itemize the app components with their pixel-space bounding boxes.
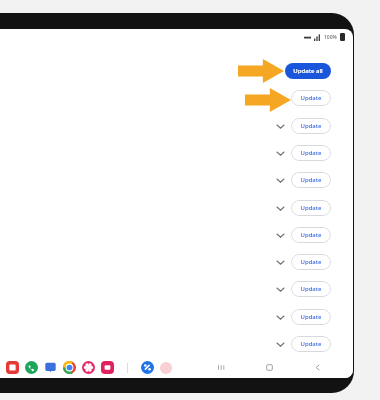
staticText: Update — [300, 176, 322, 184]
button[interactable]: Update all — [285, 63, 331, 79]
button[interactable]: Expand — [273, 309, 287, 325]
staticText: Update — [300, 313, 322, 321]
button[interactable]: Expand — [273, 145, 287, 161]
button[interactable]: Phone — [25, 361, 38, 374]
staticText: Update — [300, 149, 322, 157]
button[interactable]: Expand — [273, 281, 287, 297]
staticText: Update — [300, 340, 322, 348]
button[interactable]: Update — [291, 118, 331, 134]
staticText: Update — [300, 258, 322, 266]
button[interactable]: Update — [291, 336, 331, 352]
button[interactable]: Recents — [213, 359, 229, 375]
button[interactable]: Expand — [273, 118, 287, 134]
button[interactable]: Expand — [273, 200, 287, 216]
staticText: Update — [300, 122, 322, 130]
button[interactable]: Back — [309, 359, 325, 375]
staticText: Update — [300, 204, 322, 212]
button[interactable]: Expand — [273, 172, 287, 188]
button[interactable]: Update — [291, 145, 331, 161]
button[interactable]: Expand — [273, 227, 287, 243]
button[interactable]: Office — [6, 361, 19, 374]
staticText: Update — [300, 94, 322, 102]
staticText: Update — [300, 231, 322, 239]
button[interactable]: Gallery — [101, 361, 114, 374]
button[interactable]: Home — [261, 359, 277, 375]
button[interactable]: Update — [291, 309, 331, 325]
button[interactable]: Messages — [44, 361, 57, 374]
button[interactable]: Settings — [82, 361, 95, 374]
staticText: Update all — [293, 67, 323, 75]
button[interactable]: Expand — [273, 336, 287, 352]
button[interactable]: Update — [291, 254, 331, 270]
button[interactable]: Update — [291, 281, 331, 297]
button[interactable]: Update — [291, 227, 331, 243]
button[interactable]: Update — [291, 90, 331, 106]
button[interactable]: Recent app — [141, 361, 154, 374]
button[interactable]: Chrome — [63, 361, 76, 374]
staticText: 100% — [324, 34, 337, 41]
button[interactable]: Expand — [273, 254, 287, 270]
button[interactable]: Update — [291, 200, 331, 216]
staticText: Update — [300, 285, 322, 293]
button[interactable]: Update — [291, 172, 331, 188]
